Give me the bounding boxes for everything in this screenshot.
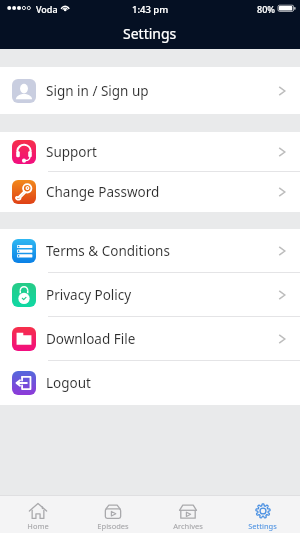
staticText: Home <box>27 521 49 531</box>
staticText: Support <box>46 143 97 161</box>
staticText: Settings <box>123 24 177 43</box>
button[interactable]: Terms & Conditions <box>0 229 300 273</box>
staticText: Download File <box>46 330 136 348</box>
button[interactable]: Support <box>0 132 300 172</box>
staticText: Archives <box>173 521 203 531</box>
button[interactable]: Download File <box>0 317 300 361</box>
button[interactable]: Logout <box>0 361 300 405</box>
button[interactable]: Change Password <box>0 172 300 212</box>
staticText: 80% <box>257 3 275 15</box>
staticText: Privacy Policy <box>46 286 132 304</box>
button[interactable]: Privacy Policy <box>0 273 300 317</box>
staticText: 1:43 pm <box>132 3 169 16</box>
staticText: Logout <box>46 374 91 392</box>
button[interactable]: Settings <box>225 496 300 533</box>
staticText: Voda <box>36 3 58 15</box>
staticText: Terms & Conditions <box>46 242 170 260</box>
staticText: Sign in / Sign up <box>46 82 149 100</box>
button[interactable]: Episodes <box>75 496 150 533</box>
staticText: Change Password <box>46 183 160 201</box>
staticText: Episodes <box>97 521 129 531</box>
button[interactable]: Sign in / Sign up <box>0 67 300 114</box>
staticText: Settings <box>248 521 277 531</box>
button[interactable]: Archives <box>150 496 225 533</box>
button[interactable]: Home <box>0 496 75 533</box>
